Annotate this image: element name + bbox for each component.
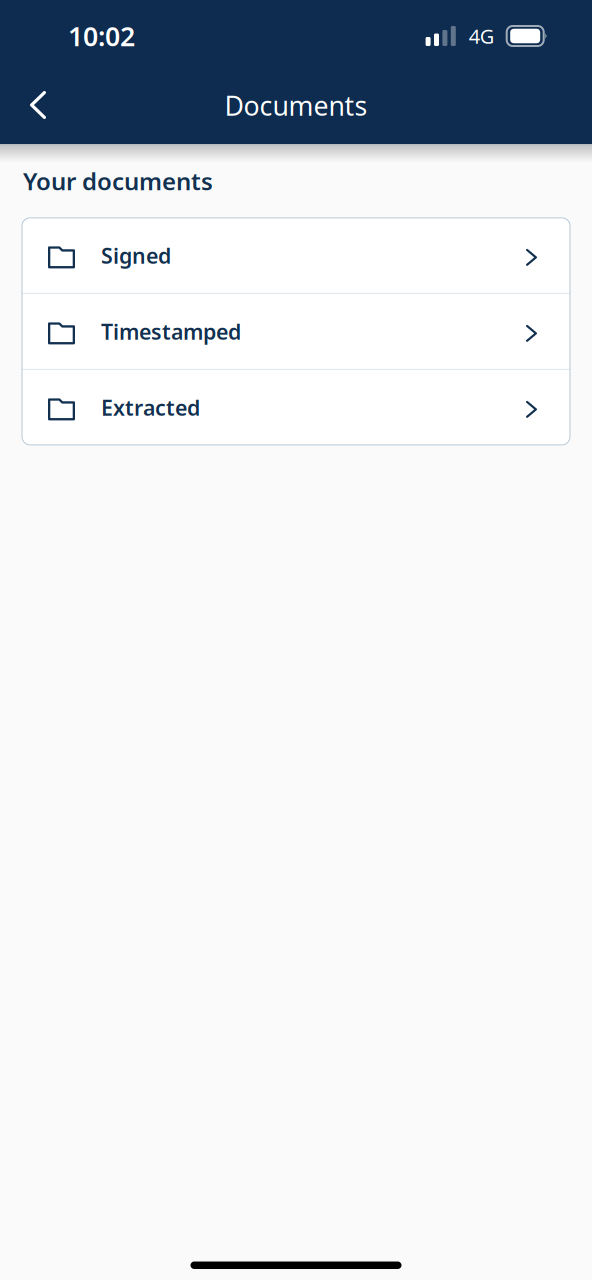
staticText: 4G [469,23,495,49]
staticText: Documents [224,88,367,123]
button[interactable]: Extracted [22,370,570,445]
button[interactable]: Signed [22,218,570,293]
button[interactable]: Timestamped [22,294,570,369]
button[interactable]: Back [0,72,76,144]
staticText: Signed [101,241,171,269]
staticText: 10:02 [68,18,135,54]
staticText: Your documents [23,165,213,197]
staticText: Timestamped [101,317,241,345]
staticText: Extracted [101,393,200,421]
